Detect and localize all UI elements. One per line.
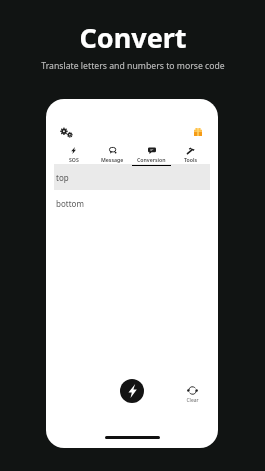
button[interactable]: top bbox=[54, 164, 210, 190]
button[interactable]: Message bbox=[93, 147, 132, 166]
staticText: top bbox=[56, 172, 69, 183]
staticText: Tools bbox=[184, 156, 198, 163]
button[interactable]: Settings bbox=[58, 125, 72, 139]
button[interactable]: bottom bbox=[54, 191, 210, 215]
staticText: Clear bbox=[186, 397, 199, 404]
staticText: bottom bbox=[56, 198, 84, 209]
staticText: SOS bbox=[69, 156, 79, 163]
button[interactable]: Convert bbox=[120, 379, 144, 403]
staticText: Message bbox=[101, 156, 124, 163]
staticText: Convert bbox=[79, 19, 187, 56]
button[interactable]: Gift bbox=[192, 126, 204, 138]
button[interactable]: Clear bbox=[182, 385, 202, 404]
button[interactable]: Tools bbox=[171, 147, 210, 166]
button[interactable]: SOS bbox=[54, 147, 93, 166]
button[interactable]: Conversion bbox=[132, 147, 171, 166]
staticText: Translate letters and numbers to morse c… bbox=[41, 60, 225, 72]
staticText: Conversion bbox=[137, 156, 166, 163]
